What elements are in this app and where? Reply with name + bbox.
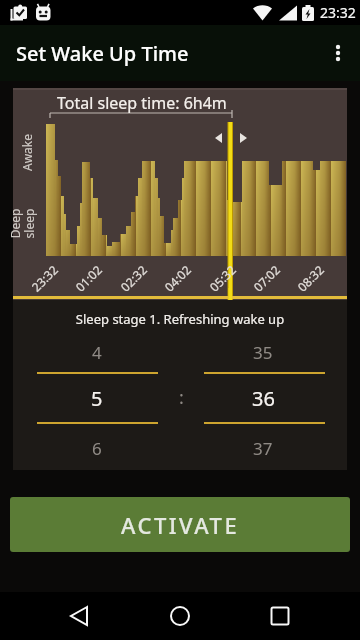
- button[interactable]: 5: [57, 382, 137, 414]
- staticText: Set Wake Up Time: [16, 40, 189, 67]
- staticText: 04:02: [161, 261, 194, 295]
- staticText: 07:02: [250, 261, 283, 295]
- staticText: 08:32: [294, 261, 327, 295]
- staticText: 23:32: [28, 261, 61, 295]
- button[interactable]: 37: [223, 432, 303, 464]
- staticText: 6: [92, 437, 102, 460]
- staticText: Awake: [19, 133, 35, 171]
- button[interactable]: ACTIVATE: [10, 497, 350, 552]
- staticText: 02:32: [117, 261, 150, 295]
- button[interactable]: [256, 592, 304, 640]
- staticText: ACTIVATE: [121, 510, 240, 540]
- staticText: 37: [253, 437, 273, 460]
- staticText: Deep sleep: [6, 208, 37, 238]
- button[interactable]: [156, 592, 204, 640]
- staticText: 23:32: [320, 3, 356, 22]
- staticText: 4: [92, 341, 102, 364]
- button[interactable]: 4: [57, 336, 137, 368]
- staticText: 35: [253, 341, 273, 364]
- staticText: :: [179, 385, 184, 410]
- button[interactable]: 6: [57, 432, 137, 464]
- button[interactable]: [312, 29, 360, 77]
- button[interactable]: [55, 592, 103, 640]
- staticText: 05:32: [206, 261, 239, 295]
- button[interactable]: 35: [223, 336, 303, 368]
- staticText: 5: [91, 385, 103, 412]
- button[interactable]: 36: [223, 382, 303, 414]
- button[interactable]: :: [141, 381, 221, 413]
- staticText: Total sleep time: 6h4m: [57, 92, 227, 114]
- staticText: 01:02: [72, 261, 105, 295]
- staticText: Sleep stage 1. Refreshing wake up: [13, 310, 347, 328]
- staticText: 36: [252, 385, 275, 412]
